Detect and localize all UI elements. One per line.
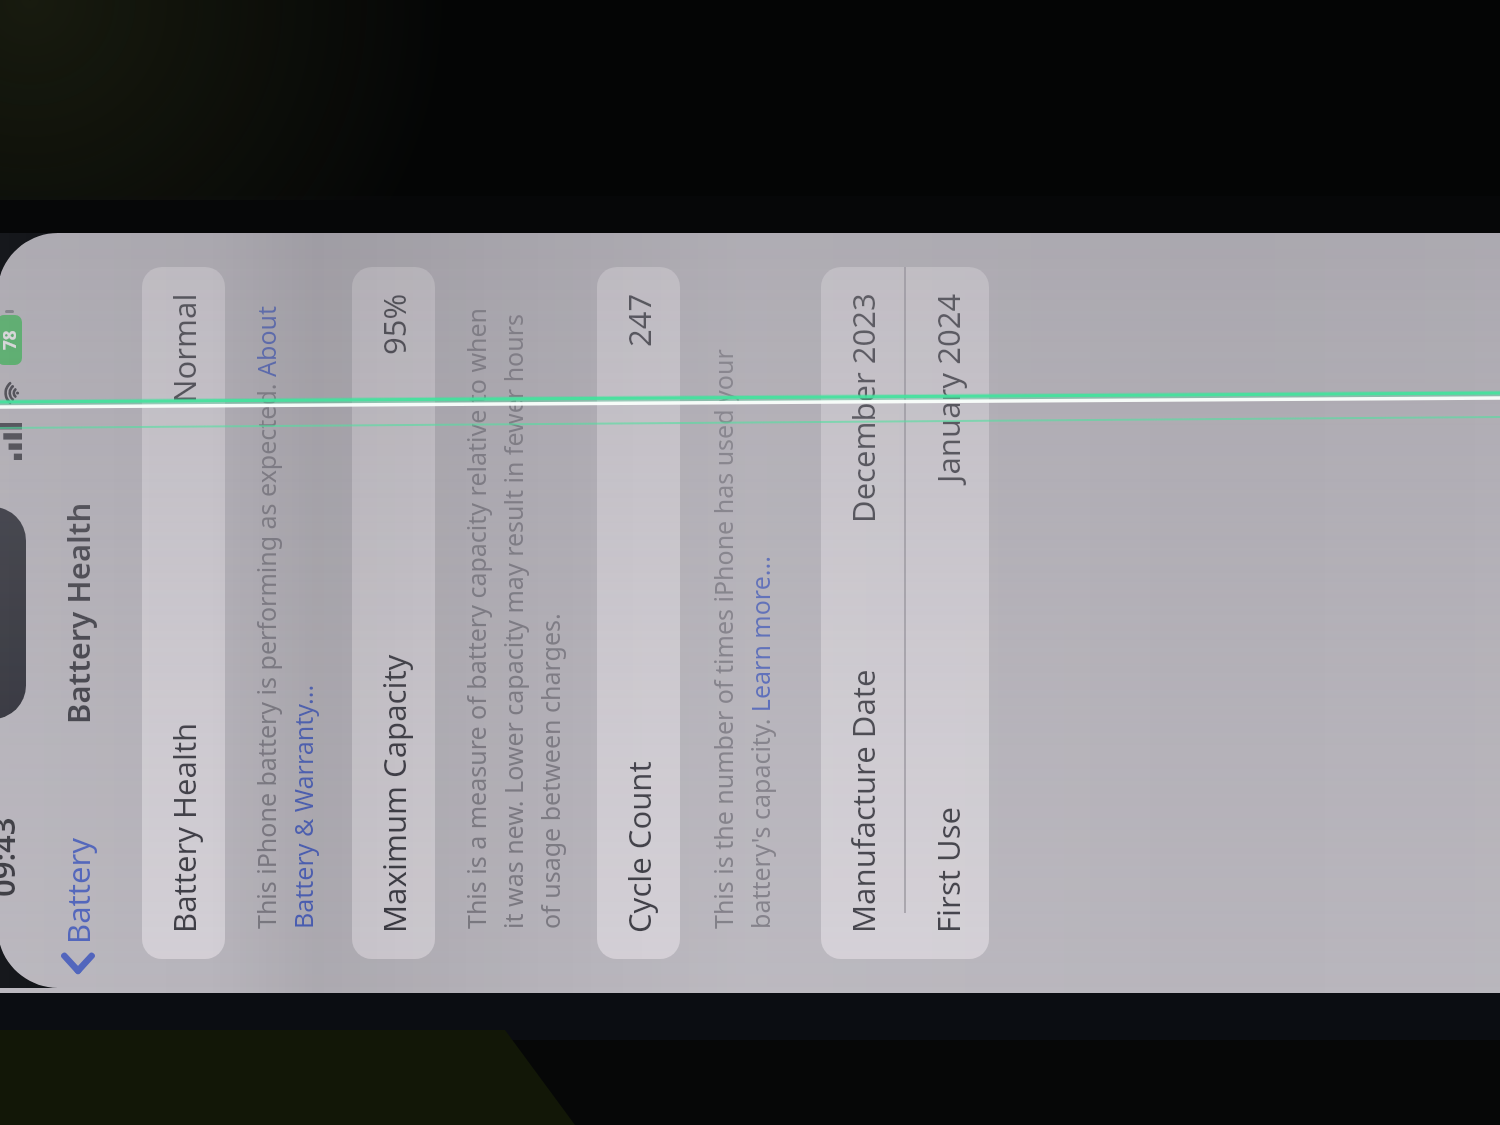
staticText: This is a measure of battery capacity re… bbox=[459, 289, 567, 929]
staticText: 95% bbox=[373, 293, 415, 355]
staticText: January 2024 bbox=[927, 293, 969, 483]
other: Back bbox=[58, 952, 98, 976]
staticText: Battery Health bbox=[163, 722, 205, 933]
staticText: This is the number of times iPhone has u… bbox=[706, 289, 777, 929]
staticText: Cycle Count bbox=[618, 761, 660, 933]
staticText: Battery Health bbox=[57, 502, 99, 724]
staticText: Normal bbox=[163, 293, 205, 403]
staticText: First Use bbox=[927, 807, 969, 933]
button[interactable]: Back bbox=[57, 837, 99, 976]
staticText: Manufacture Date bbox=[842, 669, 884, 933]
button[interactable]: Battery Health bbox=[142, 267, 225, 959]
staticText: Battery bbox=[57, 837, 99, 944]
button[interactable]: Cycle Count bbox=[597, 267, 680, 959]
staticText: December 2023 bbox=[842, 293, 884, 523]
button[interactable]: Manufacture Date bbox=[821, 267, 904, 959]
button[interactable]: First Use bbox=[906, 267, 989, 959]
staticText: 78 bbox=[0, 330, 21, 350]
staticText: 09:43 bbox=[0, 817, 24, 897]
staticText: This iPhone battery is performing as exp… bbox=[249, 289, 320, 929]
button[interactable]: Maximum Capacity bbox=[352, 267, 435, 959]
staticText: Maximum Capacity bbox=[373, 654, 415, 933]
staticText: 247 bbox=[618, 293, 660, 347]
